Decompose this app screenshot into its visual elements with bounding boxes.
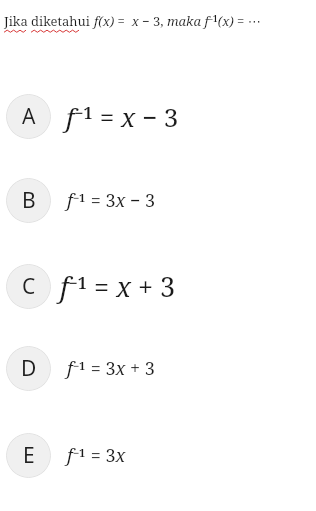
- staticText: f−1: [67, 443, 86, 468]
- staticText: E: [23, 441, 35, 470]
- button[interactable]: A: [0, 94, 316, 139]
- staticText: Jika: [4, 12, 28, 30]
- staticText: = 3x − 3: [86, 188, 156, 213]
- button[interactable]: D: [0, 346, 316, 391]
- staticText: = x + 3: [87, 268, 176, 305]
- staticText: B: [22, 186, 36, 215]
- staticText: f−1: [67, 356, 86, 381]
- button[interactable]: E: [0, 433, 316, 478]
- staticText: = x − 3: [93, 99, 179, 134]
- button[interactable]: B: [0, 178, 316, 223]
- staticText: C: [22, 272, 36, 301]
- staticText: = 3x: [86, 443, 126, 468]
- staticText: f(x) = x − 3, maka f−1(x) = ⋯: [94, 12, 261, 30]
- staticText: f−1: [67, 188, 86, 213]
- button[interactable]: C: [0, 264, 316, 309]
- staticText: diketahui: [31, 12, 91, 30]
- staticText: = 3x + 3: [86, 356, 155, 381]
- staticText: f−1: [60, 268, 87, 305]
- staticText: A: [22, 102, 36, 131]
- staticText: f−1: [66, 99, 93, 134]
- staticText: D: [21, 354, 37, 383]
